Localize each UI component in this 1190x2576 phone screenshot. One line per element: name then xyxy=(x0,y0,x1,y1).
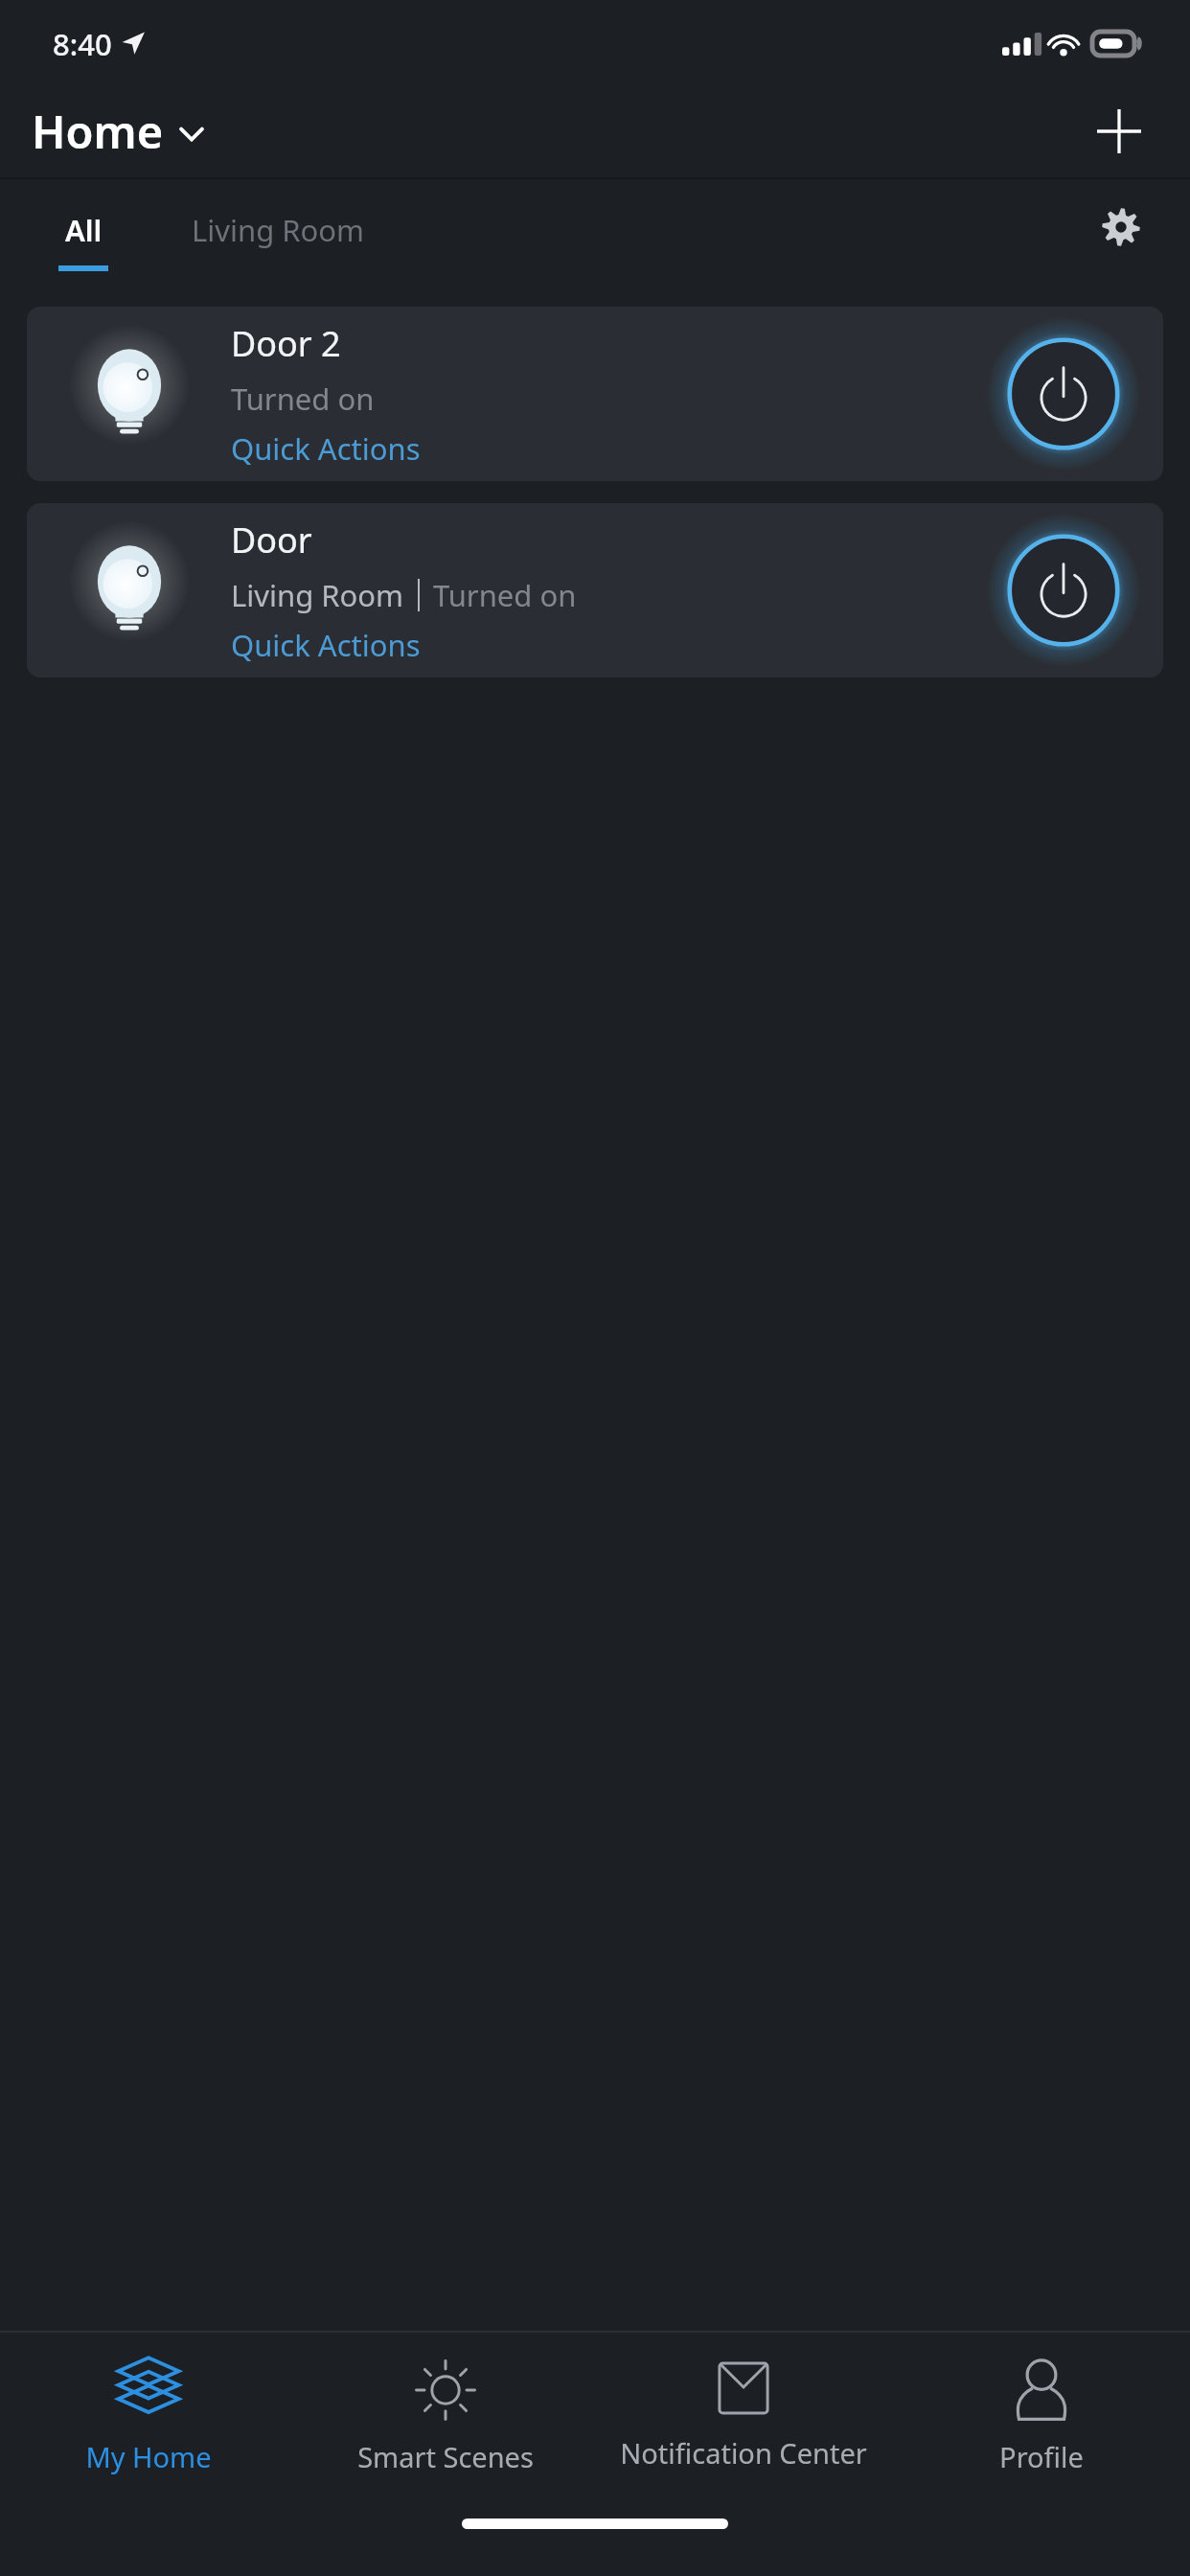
staticText: My Home xyxy=(85,2438,212,2475)
staticText: Profile xyxy=(999,2438,1084,2475)
button[interactable]: Toggle power xyxy=(964,503,1163,678)
button[interactable]: Quick Actions xyxy=(231,428,421,469)
staticText: Quick Actions xyxy=(231,428,421,469)
button[interactable]: My Home xyxy=(0,2333,297,2511)
staticText: Quick Actions xyxy=(231,625,421,665)
staticText: All xyxy=(65,210,103,250)
button[interactable]: Notification Center xyxy=(594,2333,892,2511)
button[interactable]: Profile xyxy=(892,2333,1190,2511)
staticText: Door 2 xyxy=(231,320,341,367)
staticText: Notification Center xyxy=(620,2434,867,2472)
staticText: Turned on xyxy=(231,379,375,419)
staticText: Living Room xyxy=(231,575,404,615)
button[interactable]: Living Room xyxy=(192,210,365,250)
button[interactable]: Door xyxy=(27,503,1163,678)
button[interactable]: All xyxy=(58,177,108,271)
button[interactable]: Home xyxy=(32,101,204,162)
button[interactable]: Quick Actions xyxy=(231,625,421,665)
button[interactable]: Add device xyxy=(1089,102,1149,161)
staticText: Door xyxy=(231,517,312,563)
button[interactable]: Toggle power xyxy=(964,307,1163,481)
staticText: Home xyxy=(32,101,164,162)
staticText: Living Room xyxy=(192,210,365,250)
staticText: Smart Scenes xyxy=(357,2438,534,2475)
button[interactable]: Smart Scenes xyxy=(297,2333,594,2511)
staticText: 8:40 xyxy=(53,24,112,64)
button[interactable]: Door 2 xyxy=(27,307,1163,481)
staticText: Turned on xyxy=(433,575,577,615)
button[interactable]: Settings xyxy=(1090,196,1152,258)
